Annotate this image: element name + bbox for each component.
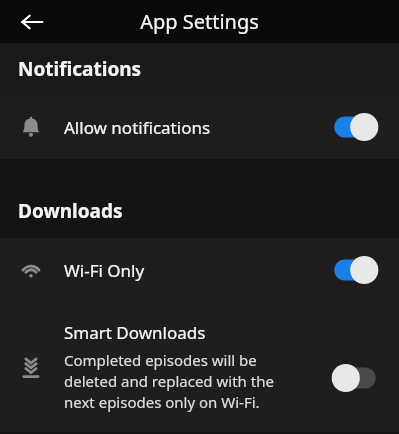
button[interactable]: On — [329, 254, 381, 286]
button[interactable]: Wi-Fi — [0, 238, 399, 302]
other: Notifications — [18, 114, 44, 140]
button[interactable]: Off — [329, 362, 381, 394]
button[interactable]: On — [329, 111, 381, 143]
staticText: Notifications — [18, 56, 142, 82]
staticText: Completed episodes will be deleted and r… — [64, 350, 274, 413]
other: Wi-Fi — [18, 257, 44, 283]
staticText: Downloads — [18, 198, 123, 224]
other: Smart Downloads — [18, 354, 44, 380]
staticText: Wi-Fi Only — [64, 259, 145, 282]
button[interactable]: Notifications — [0, 95, 399, 159]
staticText: Allow notifications — [64, 116, 211, 139]
staticText: Smart Downloads — [64, 321, 206, 344]
button[interactable]: Back — [14, 4, 50, 40]
button[interactable]: Smart Downloads — [0, 302, 399, 432]
staticText: App Settings — [0, 8, 399, 35]
